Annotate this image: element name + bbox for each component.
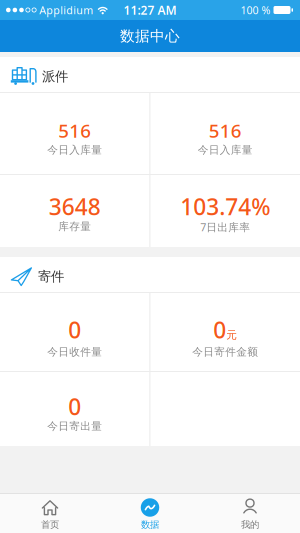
- staticText: 今日入库量: [198, 143, 253, 156]
- staticText: 今日入库量: [47, 143, 102, 156]
- staticText: 0: [68, 315, 81, 345]
- staticText: 516: [209, 118, 242, 143]
- staticText: 库存量: [58, 220, 91, 233]
- staticText: 3648: [49, 191, 101, 221]
- button[interactable]: 首页: [0, 494, 100, 533]
- staticText: 寄件: [38, 268, 64, 285]
- staticText: 派件: [42, 68, 68, 85]
- button[interactable]: 我的: [200, 494, 300, 533]
- staticText: 数据: [141, 519, 159, 530]
- staticText: 我的: [241, 519, 259, 530]
- staticText: 今日收件量: [47, 345, 102, 359]
- staticText: 100 %: [240, 3, 270, 17]
- staticText: 今日寄件金额: [192, 345, 258, 359]
- button[interactable]: 数据: [100, 494, 200, 533]
- staticText: 0: [213, 315, 226, 345]
- staticText: 11:27 AM: [123, 2, 176, 18]
- staticText: 首页: [41, 519, 59, 530]
- staticText: 7日出库率: [200, 220, 250, 234]
- staticText: 516: [58, 118, 91, 143]
- staticText: Applidium: [39, 3, 93, 17]
- staticText: 元: [226, 328, 237, 341]
- staticText: 103.74%: [180, 191, 270, 221]
- staticText: 今日寄出量: [47, 420, 102, 433]
- staticText: 0: [68, 391, 81, 421]
- staticText: 数据中心: [120, 27, 180, 45]
